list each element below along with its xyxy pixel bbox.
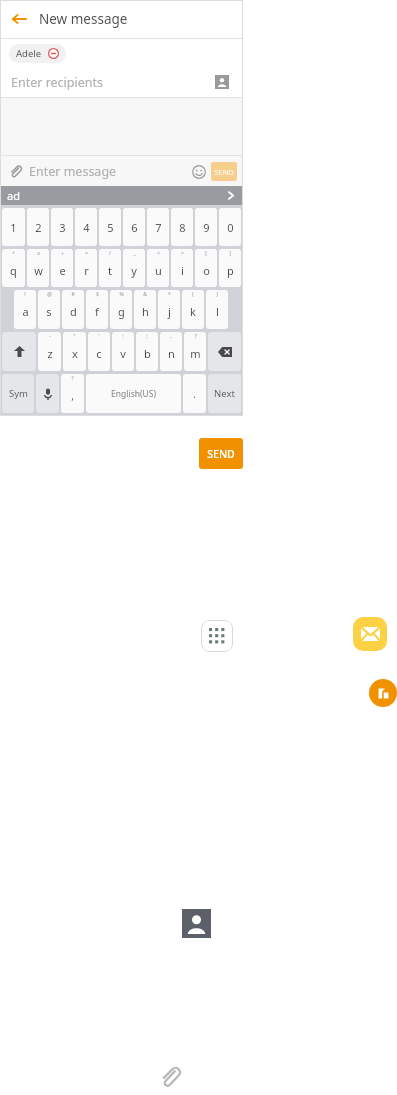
button[interactable]: * bbox=[158, 290, 180, 329]
button[interactable]: " bbox=[63, 332, 86, 371]
staticText: a bbox=[22, 304, 29, 319]
staticText: % bbox=[119, 291, 124, 298]
button[interactable]: ! bbox=[14, 290, 36, 329]
button[interactable]: Compose bbox=[369, 679, 397, 707]
staticText: , bbox=[170, 333, 172, 340]
staticText: ( bbox=[192, 291, 194, 298]
staticText: ] bbox=[229, 250, 231, 257]
staticText: . bbox=[193, 387, 196, 401]
button[interactable]: x bbox=[27, 249, 49, 287]
button[interactable]: Back bbox=[9, 9, 29, 29]
staticText: x bbox=[37, 250, 40, 257]
button[interactable]: : bbox=[112, 332, 134, 371]
staticText: Sym bbox=[9, 387, 28, 400]
button[interactable]: Voice input bbox=[36, 374, 59, 413]
staticText: " bbox=[73, 333, 76, 340]
staticText: ' bbox=[98, 333, 100, 340]
staticText: $ bbox=[96, 291, 99, 298]
staticText: ) bbox=[216, 291, 218, 298]
staticText: 7 bbox=[155, 220, 162, 235]
staticText: z bbox=[47, 346, 53, 361]
staticText: p bbox=[227, 263, 234, 278]
button[interactable]: # bbox=[62, 290, 84, 329]
button[interactable]: , bbox=[160, 332, 182, 371]
staticText: [ bbox=[205, 250, 207, 257]
button[interactable]: 2 bbox=[27, 208, 49, 246]
button[interactable]: 9 bbox=[195, 208, 217, 246]
staticText: 5 bbox=[107, 220, 114, 235]
button[interactable]: ] bbox=[219, 249, 241, 287]
button[interactable]: @ bbox=[38, 290, 60, 329]
button[interactable]: / bbox=[99, 249, 121, 287]
button[interactable]: 3 bbox=[51, 208, 73, 246]
button[interactable]: 5 bbox=[99, 208, 121, 246]
button[interactable]: ad bbox=[0, 186, 243, 205]
button[interactable]: ÷ bbox=[51, 249, 73, 287]
staticText: l bbox=[216, 304, 219, 319]
staticText: 4 bbox=[83, 220, 90, 235]
button[interactable]: Adele bbox=[9, 44, 66, 63]
staticText: c bbox=[96, 346, 102, 361]
button[interactable]: ? bbox=[61, 374, 84, 413]
button[interactable]: ; bbox=[136, 332, 158, 371]
button[interactable]: ' bbox=[88, 332, 110, 371]
button[interactable]: - bbox=[38, 332, 61, 371]
staticText: Enter recipients bbox=[11, 74, 104, 91]
button[interactable]: 0 bbox=[219, 208, 241, 246]
staticText: SEND bbox=[207, 447, 235, 461]
button[interactable]: ( bbox=[182, 290, 204, 329]
button[interactable]: > bbox=[171, 249, 193, 287]
button[interactable]: = bbox=[75, 249, 97, 287]
staticText: u bbox=[155, 263, 162, 278]
button[interactable]: Back bbox=[0, 0, 243, 38]
button[interactable]: English(US) bbox=[86, 374, 181, 413]
staticText: s bbox=[46, 304, 52, 319]
button[interactable]: SEND bbox=[199, 438, 243, 469]
button[interactable]: 6 bbox=[123, 208, 145, 246]
staticText: 2 bbox=[35, 220, 42, 235]
button[interactable]: < bbox=[147, 249, 169, 287]
button[interactable]: _ bbox=[123, 249, 145, 287]
button[interactable]: [ bbox=[195, 249, 217, 287]
button[interactable]: Backspace bbox=[208, 332, 241, 371]
button[interactable]: $ bbox=[86, 290, 108, 329]
button[interactable]: 1 bbox=[2, 208, 25, 246]
staticText: 9 bbox=[203, 220, 210, 235]
button[interactable]: Attach bbox=[155, 1062, 185, 1092]
button[interactable]: SEND bbox=[211, 162, 237, 181]
button[interactable]: ) bbox=[206, 290, 228, 329]
button[interactable]: % bbox=[110, 290, 132, 329]
staticText: f bbox=[95, 304, 99, 319]
staticText: New message bbox=[39, 10, 128, 28]
button[interactable]: + bbox=[2, 249, 25, 287]
button[interactable]: & bbox=[134, 290, 156, 329]
button[interactable]: Contacts bbox=[182, 909, 211, 938]
staticText: # bbox=[71, 291, 75, 298]
button[interactable]: 4 bbox=[75, 208, 97, 246]
staticText: i bbox=[181, 263, 184, 278]
button[interactable]: Next bbox=[208, 374, 241, 413]
button[interactable]: Attach bbox=[7, 163, 23, 179]
button[interactable]: Messages bbox=[353, 617, 387, 651]
staticText: o bbox=[203, 263, 210, 278]
staticText: 3 bbox=[59, 220, 66, 235]
button[interactable]: Enter recipients bbox=[0, 67, 243, 97]
button[interactable]: Shift bbox=[2, 332, 36, 371]
staticText: = bbox=[85, 250, 88, 257]
staticText: 0 bbox=[227, 220, 234, 235]
staticText: g bbox=[118, 304, 125, 319]
button[interactable]: ? bbox=[184, 332, 206, 371]
staticText: j bbox=[168, 304, 171, 319]
button[interactable]: Sym bbox=[2, 374, 34, 413]
button[interactable]: 7 bbox=[147, 208, 169, 246]
button[interactable]: . bbox=[183, 374, 206, 413]
button[interactable]: 8 bbox=[171, 208, 193, 246]
button[interactable]: Emoji bbox=[189, 162, 208, 181]
staticText: v bbox=[120, 346, 126, 361]
staticText: q bbox=[10, 263, 17, 278]
button[interactable]: Add from contacts bbox=[214, 74, 230, 90]
staticText: ? bbox=[194, 333, 197, 340]
staticText: k bbox=[190, 304, 196, 319]
staticText: e bbox=[59, 263, 66, 278]
button[interactable]: Apps bbox=[201, 620, 233, 652]
